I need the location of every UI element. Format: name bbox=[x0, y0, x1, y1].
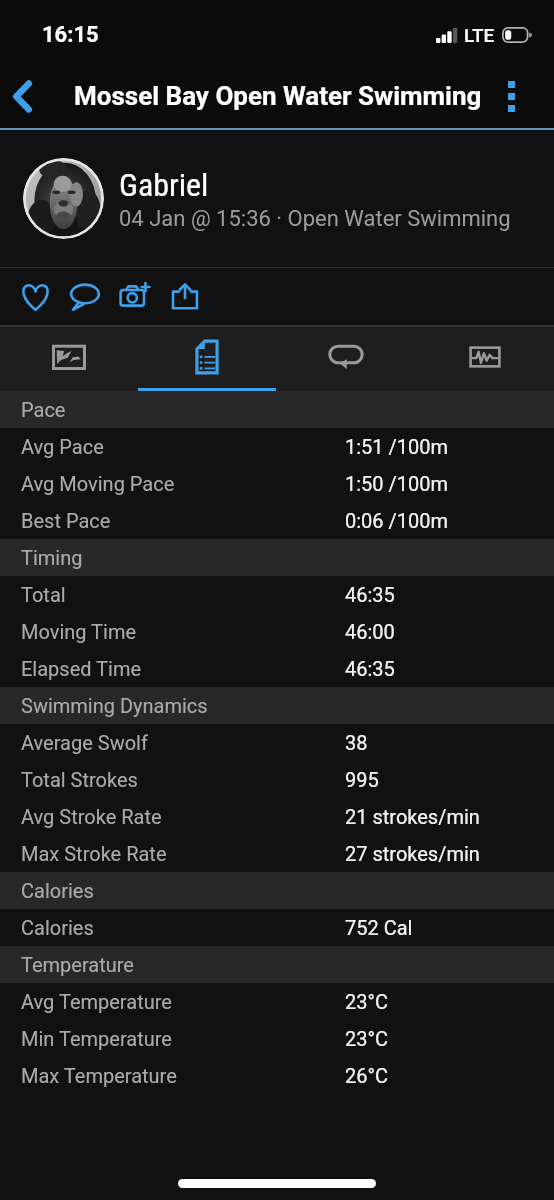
staticText: 1:50 /100m bbox=[345, 472, 449, 495]
button[interactable]: Back bbox=[0, 62, 56, 130]
staticText: Moving Time bbox=[21, 620, 137, 643]
button[interactable]: More options bbox=[469, 62, 554, 130]
button[interactable]: Details bbox=[138, 327, 276, 391]
staticText: Gabriel bbox=[119, 166, 209, 204]
button[interactable]: Min Temperature bbox=[0, 1020, 554, 1057]
staticText: Avg Pace bbox=[21, 435, 104, 458]
staticText: 0:06 /100m bbox=[345, 509, 449, 532]
button[interactable]: Best Pace bbox=[0, 502, 554, 539]
button[interactable]: Total bbox=[0, 576, 554, 613]
staticText: Max Stroke Rate bbox=[21, 842, 167, 865]
staticText: 38 bbox=[345, 731, 368, 754]
staticText: 27 strokes/min bbox=[345, 842, 480, 865]
staticText: 21 strokes/min bbox=[345, 805, 480, 828]
button[interactable]: Calories bbox=[0, 909, 554, 946]
staticText: 46:00 bbox=[345, 620, 395, 643]
staticText: 04 Jan @ 15:36 · Open Water Swimming bbox=[119, 206, 511, 232]
staticText: Mossel Bay Open Water Swimming bbox=[74, 81, 482, 111]
button[interactable]: Elapsed Time bbox=[0, 650, 554, 687]
button[interactable]: Avg Moving Pace bbox=[0, 465, 554, 502]
button[interactable]: Avg Temperature bbox=[0, 983, 554, 1020]
staticText: Elapsed Time bbox=[21, 657, 142, 680]
staticText: 46:35 bbox=[345, 583, 395, 606]
button[interactable]: Avg Stroke Rate bbox=[0, 798, 554, 835]
button[interactable]: Avg Pace bbox=[0, 428, 554, 465]
staticText: Avg Stroke Rate bbox=[21, 805, 162, 828]
button[interactable]: Laps bbox=[276, 327, 415, 391]
staticText: Temperature bbox=[21, 953, 134, 976]
staticText: Calories bbox=[21, 879, 94, 902]
staticText: Average Swolf bbox=[21, 731, 148, 754]
staticText: 1:51 /100m bbox=[345, 435, 449, 458]
button[interactable]: Add photo bbox=[110, 268, 160, 324]
staticText: 16:15 bbox=[42, 22, 99, 48]
staticText: Timing bbox=[21, 546, 83, 569]
button[interactable]: Max Temperature bbox=[0, 1057, 554, 1094]
staticText: Max Temperature bbox=[21, 1064, 177, 1087]
staticText: Best Pace bbox=[21, 509, 111, 532]
staticText: 23°C bbox=[345, 990, 388, 1013]
button[interactable]: Share bbox=[160, 268, 210, 324]
staticText: Swimming Dynamics bbox=[21, 694, 208, 717]
staticText: 26°C bbox=[345, 1064, 388, 1087]
button[interactable]: Max Stroke Rate bbox=[0, 835, 554, 872]
staticText: Calories bbox=[21, 916, 94, 939]
staticText: Pace bbox=[21, 398, 66, 421]
button[interactable]: Comment bbox=[60, 268, 110, 324]
staticText: 46:35 bbox=[345, 657, 395, 680]
staticText: 23°C bbox=[345, 1027, 388, 1050]
staticText: Avg Temperature bbox=[21, 990, 172, 1013]
button[interactable]: Charts bbox=[415, 327, 554, 391]
button[interactable]: Total Strokes bbox=[0, 761, 554, 798]
button[interactable]: Like bbox=[10, 268, 60, 324]
button[interactable]: Moving Time bbox=[0, 613, 554, 650]
staticText: 995 bbox=[345, 768, 379, 791]
staticText: LTE bbox=[464, 24, 495, 46]
staticText: Min Temperature bbox=[21, 1027, 172, 1050]
staticText: Total bbox=[21, 583, 66, 606]
button[interactable]: Map bbox=[0, 327, 138, 391]
staticText: Avg Moving Pace bbox=[21, 472, 175, 495]
button[interactable]: Average Swolf bbox=[0, 724, 554, 761]
staticText: Total Strokes bbox=[21, 768, 138, 791]
staticText: 752 Cal bbox=[345, 916, 413, 939]
